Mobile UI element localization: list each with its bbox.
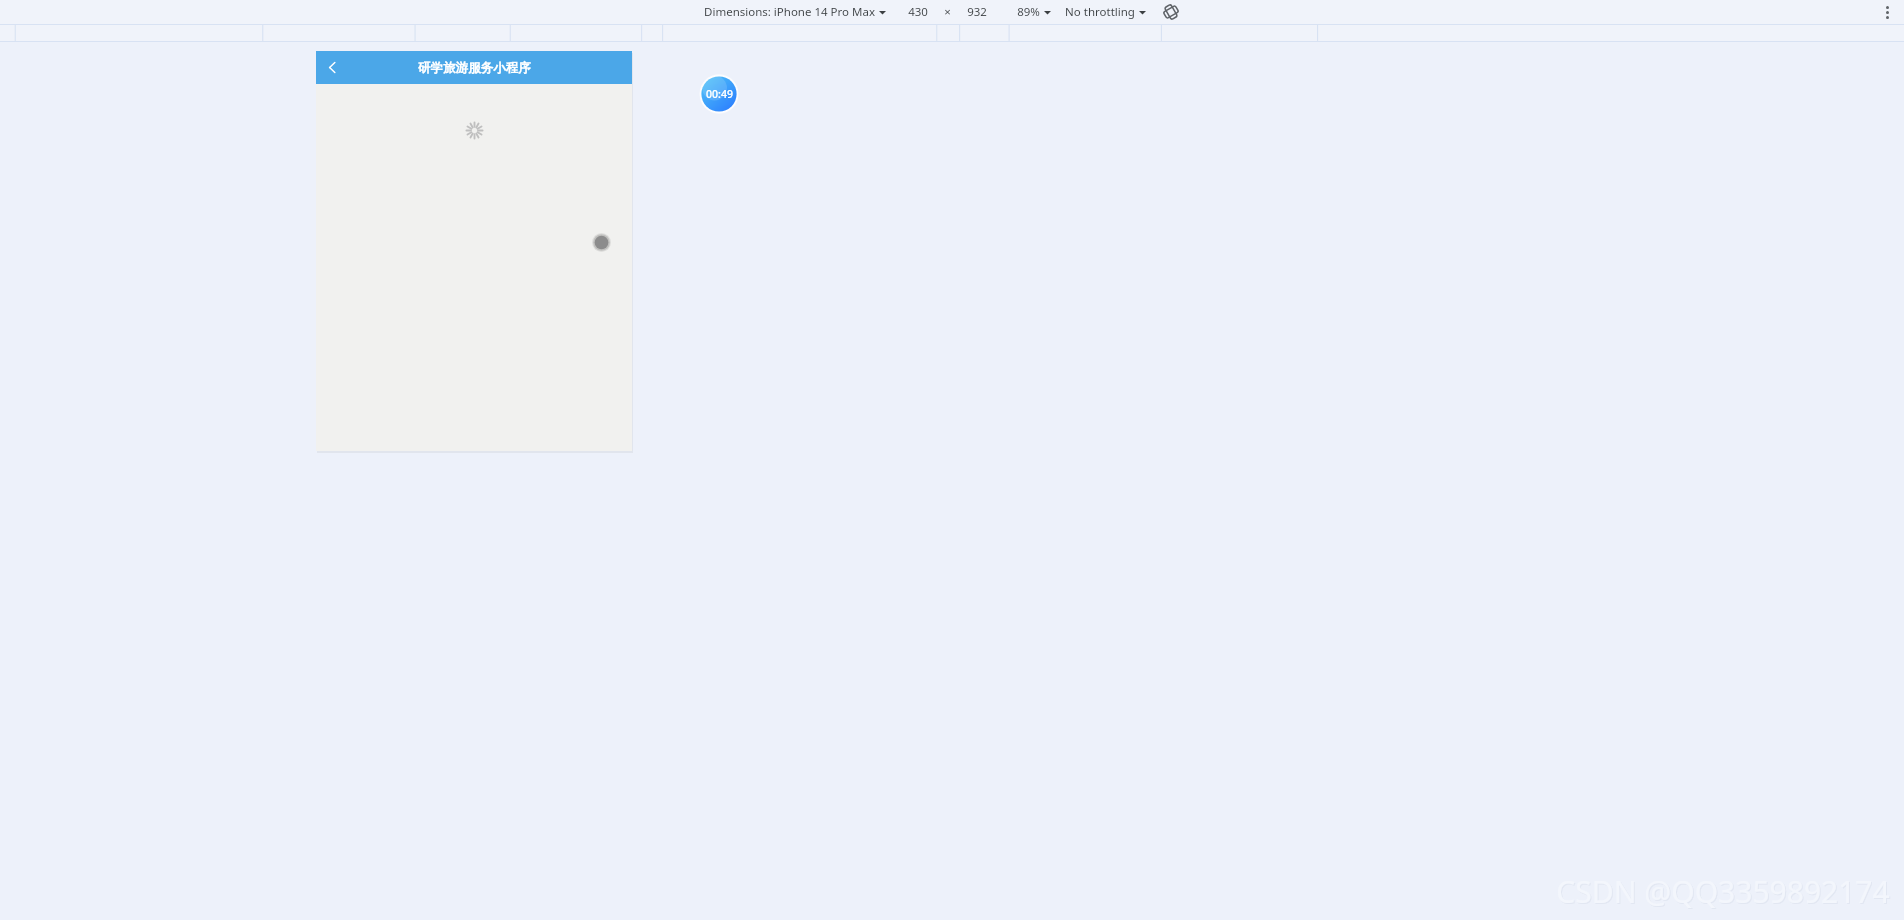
button[interactable]: Rotate (1162, 3, 1180, 21)
button[interactable]: Dimensions: iPhone 14 Pro Max (704, 4, 886, 20)
staticText: 00:49 (706, 87, 733, 101)
button[interactable]: Back (316, 51, 348, 84)
staticText: × (944, 4, 951, 20)
button[interactable]: Floating action (592, 233, 611, 252)
button[interactable]: 00:49 (699, 74, 739, 114)
staticText: No throttling (1065, 4, 1135, 20)
button[interactable]: No throttling (1065, 4, 1146, 20)
staticText: Dimensions: iPhone 14 Pro Max (704, 4, 875, 20)
button[interactable]: 89% (1017, 4, 1051, 20)
staticText: 研学旅游服务小程序 (418, 60, 531, 76)
staticText: CSDN @QQ3359892174 (1556, 871, 1890, 912)
staticText: CSDN @QQ3359892174 (1557, 872, 1891, 913)
button[interactable]: More options (1879, 4, 1895, 20)
staticText: 89% (1017, 4, 1040, 20)
staticText: 932 (967, 4, 987, 20)
staticText: 430 (908, 4, 928, 20)
